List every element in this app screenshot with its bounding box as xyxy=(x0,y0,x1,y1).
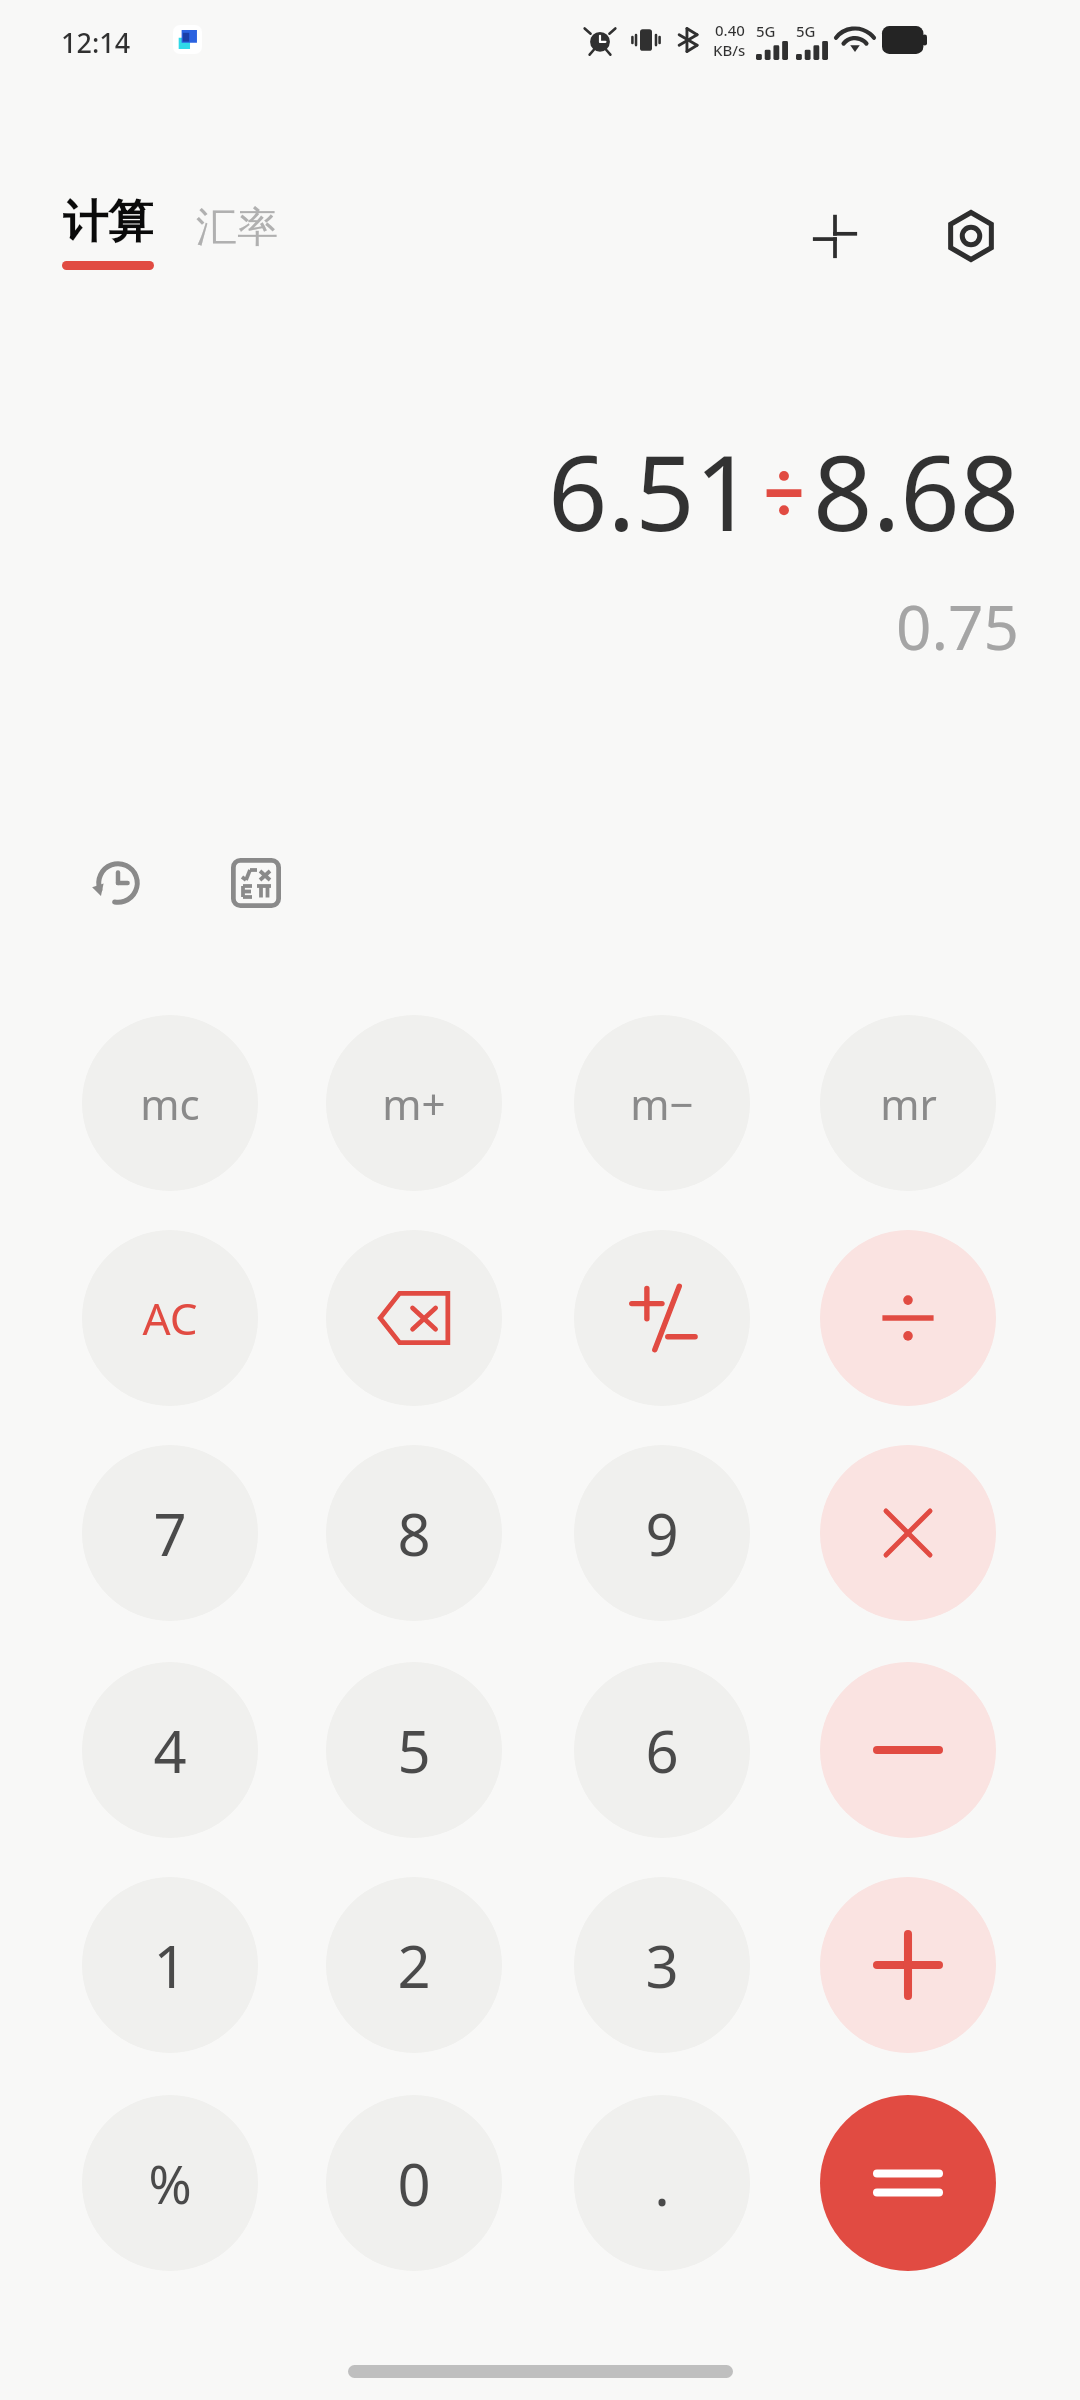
staticText: 7 xyxy=(153,1494,187,1573)
button[interactable]: Scientific calculator xyxy=(218,845,294,921)
staticText: m+ xyxy=(382,1075,446,1132)
button[interactable]: 7 xyxy=(82,1445,258,1621)
staticText: m− xyxy=(630,1075,694,1132)
staticText: 1 xyxy=(153,1926,187,2005)
staticText: AC xyxy=(142,1288,198,1348)
button[interactable]: AC xyxy=(82,1230,258,1406)
button[interactable]: 3 xyxy=(574,1877,750,2053)
button[interactable]: Toggle sign xyxy=(574,1230,750,1406)
staticText: 0.75 xyxy=(896,584,1020,668)
staticText: 0 xyxy=(397,2144,431,2223)
button[interactable]: 0 xyxy=(326,2095,502,2271)
staticText: % xyxy=(148,2148,192,2219)
staticText: 5 xyxy=(397,1711,431,1790)
staticText: 12:14 xyxy=(61,24,131,61)
button[interactable]: 9 xyxy=(574,1445,750,1621)
button[interactable]: Settings xyxy=(933,198,1009,274)
button[interactable]: 5 xyxy=(326,1662,502,1838)
button[interactable]: 1 xyxy=(82,1877,258,2053)
staticText: 6.51 xyxy=(548,420,755,562)
staticText: 2 xyxy=(397,1926,431,2005)
staticText: 6 xyxy=(645,1711,679,1790)
staticText: 计算 xyxy=(63,194,153,251)
button[interactable]: 4 xyxy=(82,1662,258,1838)
button[interactable]: mc xyxy=(82,1015,258,1191)
button[interactable]: Subtract xyxy=(820,1662,996,1838)
button[interactable]: mr xyxy=(820,1015,996,1191)
button[interactable]: 汇率 xyxy=(190,198,284,258)
staticText: mc xyxy=(140,1075,200,1132)
button[interactable]: m+ xyxy=(326,1015,502,1191)
button[interactable]: 6 xyxy=(574,1662,750,1838)
button[interactable]: 8 xyxy=(326,1445,502,1621)
staticText: 0.40 xyxy=(715,20,745,40)
staticText: 9 xyxy=(645,1494,679,1573)
button[interactable]: 2 xyxy=(326,1877,502,2053)
button[interactable]: History xyxy=(80,845,156,921)
staticText: . xyxy=(654,2144,670,2223)
button[interactable]: m− xyxy=(574,1015,750,1191)
staticText: 5G xyxy=(756,21,776,41)
button[interactable]: Backspace xyxy=(326,1230,502,1406)
button[interactable]: Equals xyxy=(820,2095,996,2271)
button[interactable]: . xyxy=(574,2095,750,2271)
staticText: 8 xyxy=(397,1494,431,1573)
button[interactable]: % xyxy=(82,2095,258,2271)
staticText: 4 xyxy=(153,1711,187,1790)
button[interactable]: Divide xyxy=(820,1230,996,1406)
staticText: 8.68 xyxy=(813,420,1020,562)
button[interactable]: 计算 xyxy=(60,194,156,270)
button[interactable]: Add xyxy=(820,1877,996,2053)
staticText: 汇率 xyxy=(196,202,278,254)
staticText: 3 xyxy=(645,1926,679,2005)
staticText: KB/s xyxy=(713,40,746,60)
button[interactable]: Multiply xyxy=(820,1445,996,1621)
button[interactable]: Floating window xyxy=(797,198,873,274)
staticText: mr xyxy=(880,1075,937,1132)
staticText: 5G xyxy=(796,21,816,41)
